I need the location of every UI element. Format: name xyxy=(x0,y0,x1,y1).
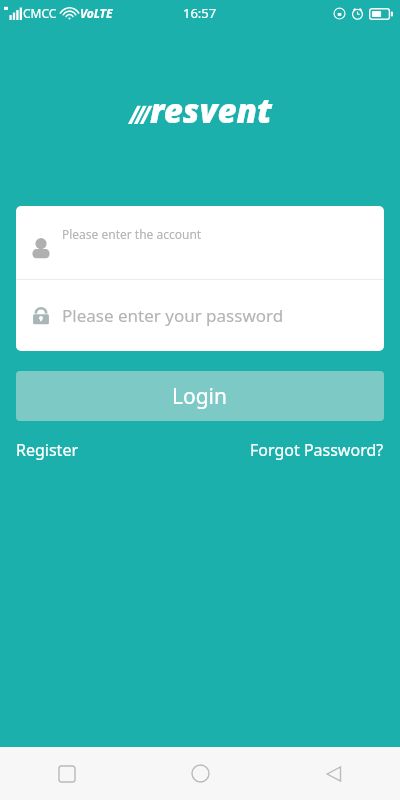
staticText: 16:57 xyxy=(183,4,217,22)
staticText: Please enter the account xyxy=(62,226,202,242)
button[interactable]: Register xyxy=(16,439,79,461)
button[interactable]: Forgot Password? xyxy=(250,439,384,461)
button[interactable]: Login xyxy=(16,371,384,421)
button[interactable]: Back xyxy=(267,747,400,800)
button[interactable]: Recent apps xyxy=(0,747,134,800)
button[interactable]: Please enter the account xyxy=(16,206,384,279)
button[interactable]: Please enter your password xyxy=(16,280,384,351)
staticText: Register xyxy=(16,439,79,461)
staticText: Please enter your password xyxy=(62,304,284,327)
button[interactable]: Home xyxy=(134,747,267,800)
staticText: CMCC xyxy=(23,5,57,21)
staticText: Login xyxy=(172,382,228,411)
staticText: VoLTE xyxy=(80,5,113,21)
staticText: resvent xyxy=(150,88,273,133)
staticText: Forgot Password? xyxy=(250,439,384,461)
